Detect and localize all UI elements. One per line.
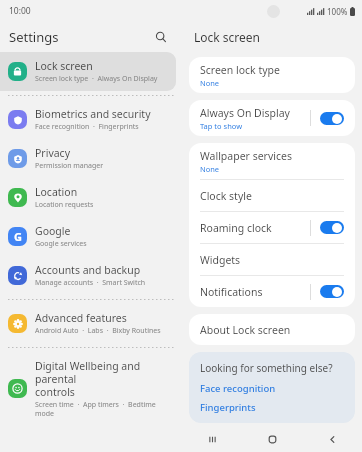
staticText: None (200, 164, 220, 174)
button[interactable]: Screen lock type (189, 57, 355, 93)
staticText: Location (35, 185, 78, 199)
staticText: Google (35, 224, 71, 238)
button[interactable]: Privacy (0, 139, 176, 178)
staticText: Face recognition · Fingerprints (35, 122, 139, 132)
button[interactable]: Notifications (189, 276, 355, 307)
button[interactable]: Always On Display (189, 100, 355, 136)
button[interactable]: Fingerprints (200, 401, 344, 414)
staticText: Location requests (35, 200, 94, 210)
button[interactable]: Roaming clock toggle (320, 221, 344, 234)
staticText: 10:00 (9, 5, 31, 17)
button[interactable]: Home (242, 426, 302, 452)
staticText: Permission manager (35, 161, 104, 171)
staticText: Google services (35, 239, 87, 249)
staticText: 100% (327, 6, 348, 17)
staticText: None (200, 78, 220, 88)
button[interactable]: Lock screen (0, 52, 176, 91)
button[interactable]: G (0, 217, 176, 256)
button[interactable]: Wallpaper services (189, 143, 355, 179)
staticText: Accounts and backup (35, 263, 141, 277)
staticText: Clock style (200, 189, 252, 203)
staticText: Widgets (200, 253, 241, 267)
staticText: Face recognition (200, 382, 276, 395)
button[interactable]: Accounts and backup (0, 256, 176, 295)
button[interactable]: Notifications toggle (320, 285, 344, 298)
staticText: G (14, 229, 22, 244)
button[interactable]: Face recognition (200, 382, 344, 395)
staticText: Android Auto · Labs · Bixby Routines (35, 326, 161, 336)
button[interactable]: Recents (182, 426, 242, 452)
button[interactable]: About Lock screen (189, 314, 355, 345)
staticText: Advanced features (35, 311, 127, 325)
staticText: Roaming clock (200, 221, 272, 235)
button[interactable]: Clock style (189, 180, 355, 211)
staticText: Lock screen (194, 29, 261, 45)
staticText: Wallpaper services (200, 149, 292, 163)
staticText: Tap to show (200, 121, 243, 131)
button[interactable]: Advanced features (0, 304, 176, 343)
staticText: Digital Wellbeing and parental controls (35, 359, 170, 399)
staticText: Manage accounts · Smart Switch (35, 278, 146, 288)
button[interactable]: Roaming clock (189, 212, 355, 243)
button[interactable]: Widgets (189, 244, 355, 275)
staticText: Always On Display (200, 106, 290, 120)
staticText: Screen lock type · Always On Display (35, 74, 158, 84)
staticText: Notifications (200, 285, 263, 299)
button[interactable]: Always On Display toggle (320, 112, 344, 125)
staticText: About Lock screen (200, 323, 291, 337)
staticText: Looking for something else? (200, 361, 333, 375)
staticText: Fingerprints (200, 401, 256, 414)
button[interactable]: Search (150, 26, 172, 48)
button[interactable]: Location (0, 178, 176, 217)
staticText: Settings (9, 28, 59, 46)
button[interactable]: Back (302, 426, 362, 452)
button[interactable]: Digital Wellbeing and parental controls (0, 352, 176, 425)
staticText: Lock screen (35, 59, 93, 73)
button[interactable]: Biometrics and security (0, 100, 176, 139)
staticText: Privacy (35, 146, 71, 160)
staticText: Biometrics and security (35, 107, 151, 121)
staticText: Screen lock type (200, 63, 280, 77)
staticText: Screen time · App timers · Bedtime mode (35, 400, 170, 418)
